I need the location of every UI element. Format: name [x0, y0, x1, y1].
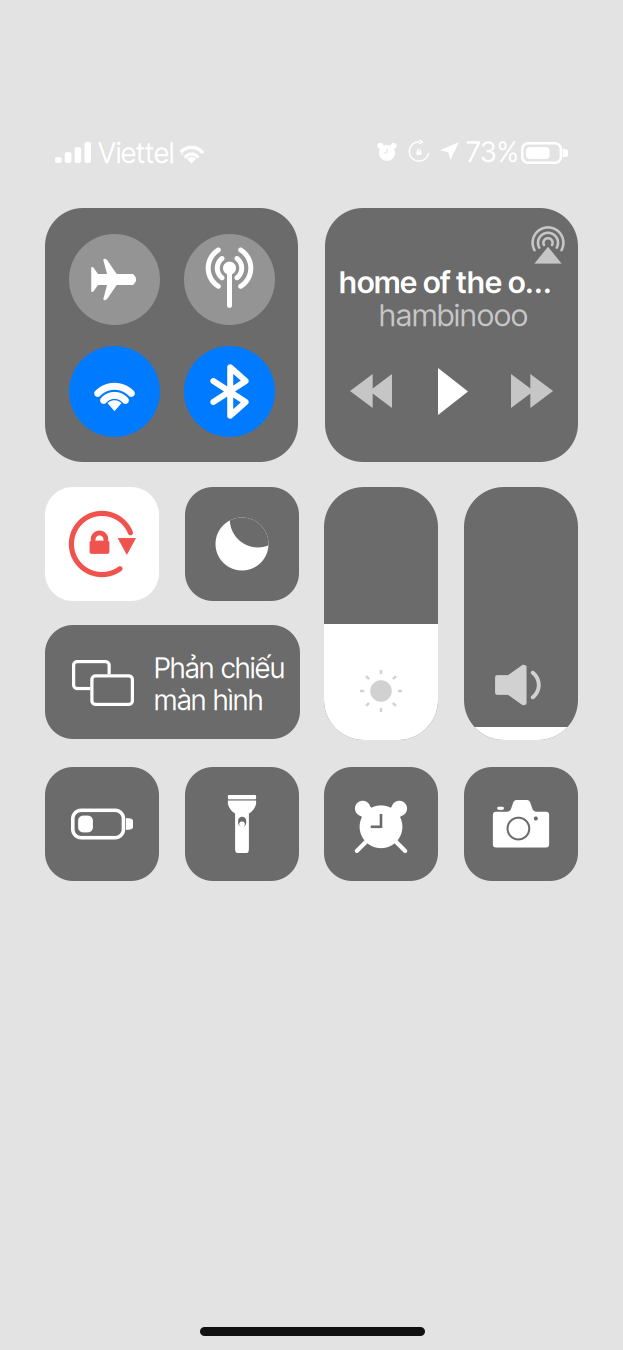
- button[interactable]: Bluetooth: [0, 0, 623, 1350]
- button[interactable]: Cellular Data: [0, 0, 623, 1350]
- button[interactable]: Camera: [0, 0, 623, 1350]
- button[interactable]: Low Power Mode: [0, 0, 623, 1350]
- staticText: Viettel: [98, 136, 174, 170]
- button[interactable]: Play: [0, 0, 623, 1350]
- button[interactable]: Previous Track: [0, 0, 623, 1350]
- button[interactable]: [0, 0, 623, 1350]
- staticText: 73%: [466, 135, 518, 169]
- button[interactable]: Airplane Mode: [0, 0, 623, 1350]
- button[interactable]: Rotation Lock: [0, 0, 623, 1350]
- button[interactable]: Next Track: [0, 0, 623, 1350]
- button[interactable]: Wi-Fi: [0, 0, 623, 1350]
- staticText: Phản chiếu: [154, 651, 285, 685]
- button[interactable]: Clock: [0, 0, 623, 1350]
- staticText: hambinooo: [379, 296, 528, 333]
- staticText: màn hình: [154, 683, 263, 717]
- button[interactable]: Flashlight: [0, 0, 623, 1350]
- staticText: home of the o...: [339, 263, 552, 300]
- button[interactable]: AirPlay: [0, 0, 623, 1350]
- button[interactable]: Do Not Disturb: [0, 0, 623, 1350]
